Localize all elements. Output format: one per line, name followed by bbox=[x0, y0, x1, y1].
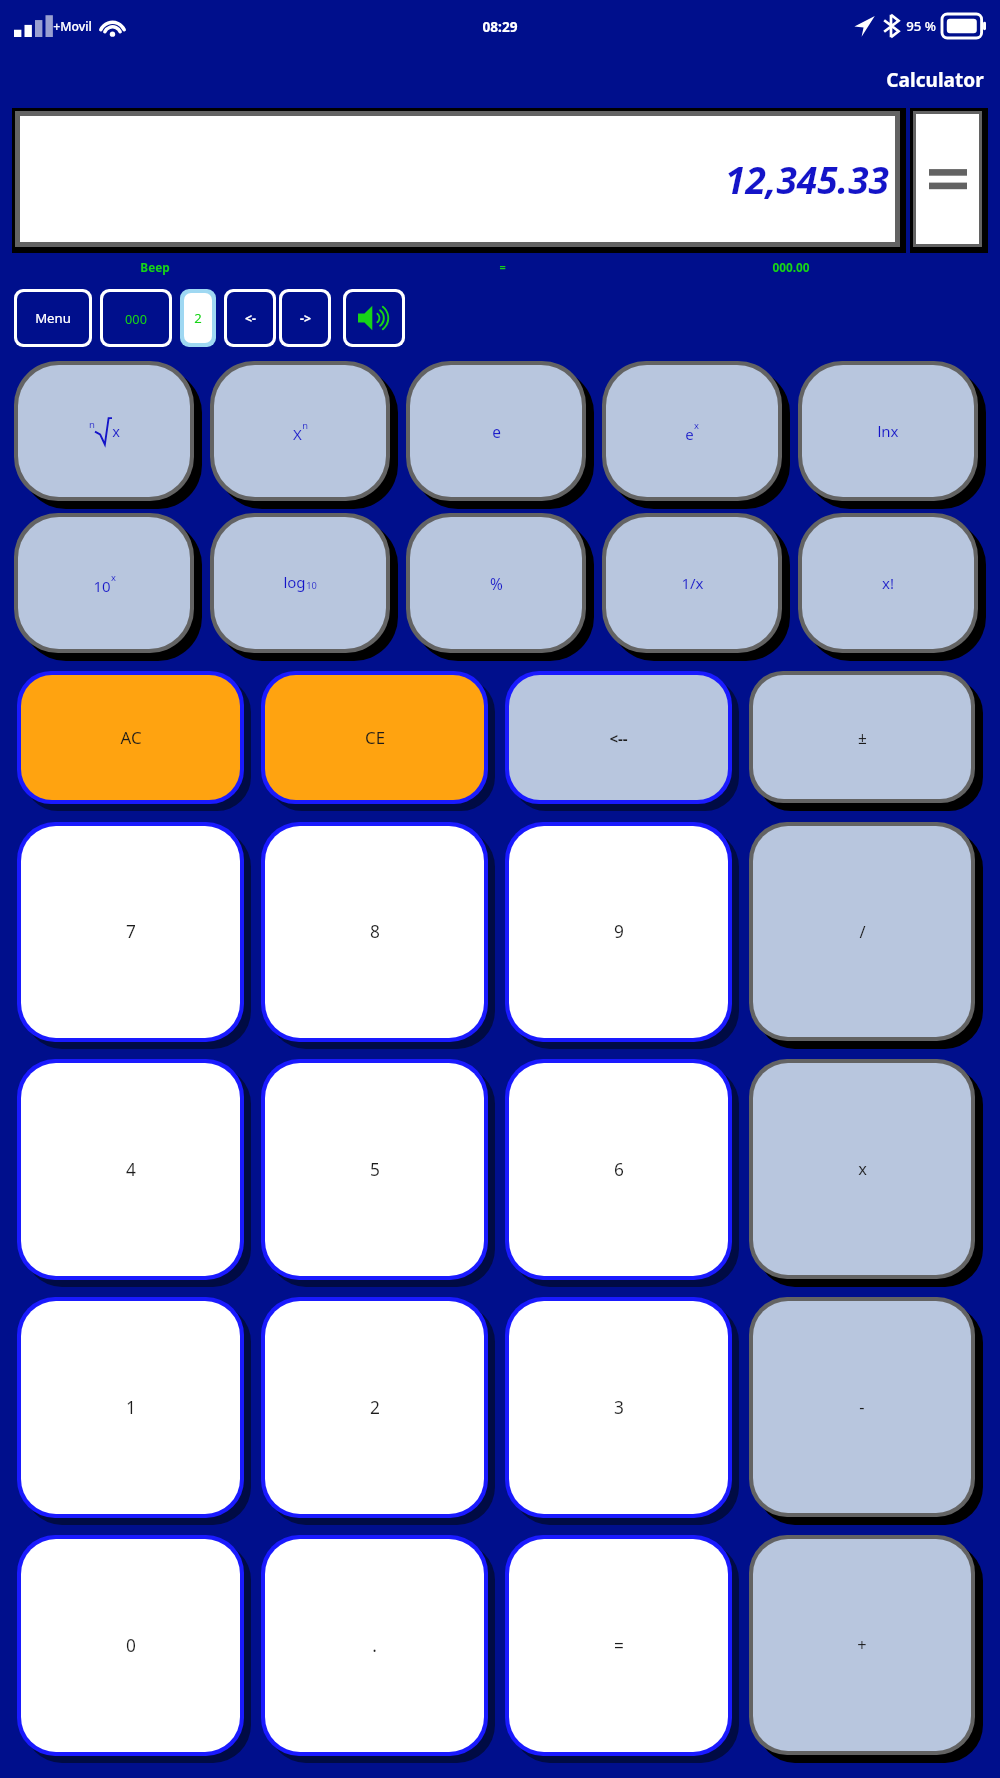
button[interactable]: 6 bbox=[509, 1063, 728, 1276]
button[interactable]: 3 bbox=[509, 1301, 728, 1514]
staticText: 4 bbox=[126, 1158, 136, 1182]
button[interactable]: <-- bbox=[509, 675, 728, 800]
button[interactable]: 10 bbox=[18, 517, 190, 649]
button[interactable]: log bbox=[214, 517, 386, 649]
staticText: Calculator bbox=[886, 67, 984, 93]
staticText: log bbox=[283, 572, 306, 592]
staticText: 10 bbox=[306, 579, 317, 592]
staticText: e bbox=[685, 424, 694, 444]
button[interactable]: AC bbox=[21, 675, 240, 800]
staticText: 6 bbox=[614, 1158, 624, 1182]
staticText: 10 bbox=[93, 576, 111, 596]
button[interactable]: 2 bbox=[265, 1301, 484, 1514]
button[interactable]: 1/x bbox=[606, 517, 778, 649]
staticText: -> bbox=[300, 310, 311, 327]
staticText: 8 bbox=[370, 920, 380, 944]
staticText: x bbox=[112, 421, 120, 441]
staticText: 0 bbox=[126, 1634, 136, 1658]
button[interactable]: x bbox=[753, 1063, 971, 1275]
staticText: 2 bbox=[370, 1396, 380, 1420]
button[interactable]: 5 bbox=[265, 1063, 484, 1276]
staticText: X bbox=[293, 424, 302, 444]
button[interactable]: lnx bbox=[802, 365, 974, 497]
staticText: n bbox=[89, 418, 95, 431]
staticText: <-- bbox=[609, 728, 628, 748]
button[interactable]: 000 bbox=[103, 292, 169, 344]
staticText: - bbox=[859, 1396, 865, 1418]
button[interactable]: . bbox=[265, 1539, 484, 1752]
button[interactable]: e bbox=[606, 365, 778, 497]
staticText: 5 bbox=[370, 1158, 380, 1182]
staticText: 1 bbox=[126, 1396, 136, 1420]
staticText: AC bbox=[120, 726, 142, 749]
staticText: lnx bbox=[877, 421, 899, 441]
staticText: Menu bbox=[35, 309, 71, 327]
staticText: x bbox=[111, 571, 116, 584]
staticText: <- bbox=[245, 310, 256, 327]
button[interactable]: 12,345.33 bbox=[20, 116, 895, 242]
button[interactable]: Move left bbox=[227, 292, 273, 344]
button[interactable]: 2 bbox=[184, 293, 212, 343]
button[interactable]: 8 bbox=[265, 826, 484, 1038]
button[interactable]: / bbox=[753, 826, 971, 1037]
button[interactable]: 0 bbox=[21, 1539, 240, 1752]
button[interactable]: % bbox=[410, 517, 582, 649]
button[interactable]: ± bbox=[753, 675, 971, 799]
button[interactable]: - bbox=[753, 1301, 971, 1513]
staticText: x! bbox=[882, 573, 894, 593]
button[interactable]: + bbox=[753, 1539, 971, 1751]
staticText: 12,345.33 bbox=[725, 154, 889, 204]
staticText: + bbox=[857, 1634, 867, 1656]
button[interactable]: 4 bbox=[21, 1063, 240, 1276]
button[interactable]: Move right bbox=[282, 292, 328, 344]
button[interactable]: 1 bbox=[21, 1301, 240, 1514]
staticText: 08:29 bbox=[482, 17, 518, 36]
staticText: % bbox=[490, 573, 503, 594]
button[interactable]: Equals bbox=[916, 114, 979, 244]
staticText: CE bbox=[365, 726, 385, 749]
button[interactable]: = bbox=[509, 1539, 728, 1752]
staticText: ± bbox=[858, 727, 867, 748]
staticText: 000 bbox=[125, 310, 147, 327]
button[interactable]: 9 bbox=[509, 826, 728, 1038]
staticText: / bbox=[859, 921, 866, 943]
staticText: e bbox=[492, 421, 501, 442]
staticText: x bbox=[694, 419, 699, 432]
staticText: x bbox=[858, 1158, 867, 1180]
button[interactable]: X bbox=[214, 365, 386, 497]
staticText: Beep bbox=[140, 259, 170, 275]
button[interactable]: n bbox=[18, 365, 190, 497]
button[interactable]: Menu bbox=[17, 292, 89, 344]
staticText: 95 % bbox=[906, 17, 936, 35]
button[interactable]: Toggle sound bbox=[346, 292, 402, 344]
staticText: = bbox=[614, 1634, 624, 1658]
staticText: . bbox=[372, 1634, 377, 1658]
button[interactable]: CE bbox=[265, 675, 484, 800]
staticText: = bbox=[499, 259, 506, 274]
staticText: +Movil bbox=[53, 18, 92, 35]
button[interactable]: e bbox=[410, 365, 582, 497]
staticText: 1/x bbox=[681, 573, 704, 593]
staticText: 2 bbox=[194, 309, 202, 327]
button[interactable]: x! bbox=[802, 517, 974, 649]
staticText: 9 bbox=[614, 920, 624, 944]
staticText: 7 bbox=[126, 920, 136, 944]
staticText: 3 bbox=[614, 1396, 624, 1420]
staticText: 000.00 bbox=[772, 259, 810, 275]
staticText: n bbox=[302, 419, 308, 432]
button[interactable]: 7 bbox=[21, 826, 240, 1038]
